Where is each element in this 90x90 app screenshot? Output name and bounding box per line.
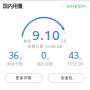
button[interactable]: 更多详情 <box>5 73 42 82</box>
staticText: GB <box>60 38 66 44</box>
staticText: 9.10 <box>32 26 60 44</box>
staticText: % <box>78 56 81 61</box>
staticText: 0 <box>41 49 46 61</box>
staticText: 更多详情 <box>15 75 31 80</box>
staticText: • 实时更新中 <box>63 4 86 9</box>
staticText: 剩余天数 <box>7 61 23 66</box>
staticText: 剩余 <box>23 39 31 44</box>
staticText: 超出流量 <box>37 61 53 66</box>
staticText: 加速包 <box>60 75 72 80</box>
staticText: 今日已用 <box>67 61 83 66</box>
staticText: 36 <box>8 49 18 61</box>
button[interactable]: 加速包 <box>48 73 85 82</box>
staticText: .0 <box>46 56 49 61</box>
staticText: .8 <box>18 56 21 61</box>
staticText: 43 <box>68 49 78 61</box>
staticText: 套餐总量 10.688 GB <box>27 44 62 49</box>
staticText: 国内用量 <box>2 3 22 10</box>
